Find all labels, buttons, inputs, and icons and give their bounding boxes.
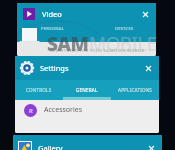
staticText: SAM [47, 31, 89, 57]
button[interactable]: Gallery [13, 135, 162, 150]
button[interactable]: Settings [15, 56, 159, 133]
button[interactable]: Video [17, 3, 156, 56]
staticText: DEVICES [115, 26, 134, 31]
button[interactable]: Close Gallery [143, 140, 159, 150]
button[interactable]: GENERAL [63, 80, 111, 100]
staticText: Accessories [44, 105, 83, 115]
staticText: EVERYTHING FOR YOUR SAMSUNG MOBILE [50, 48, 145, 53]
button[interactable]: Close Video [137, 6, 153, 22]
button[interactable]: CONTROLS [15, 80, 63, 100]
staticText: GENERAL [76, 87, 98, 93]
staticText: APPLICATIONS [118, 87, 153, 93]
staticText: R [29, 107, 33, 115]
staticText: PERSONAL [41, 26, 65, 31]
staticText: Gallery [38, 143, 63, 150]
staticText: CONTROLS [26, 87, 52, 93]
button[interactable]: Close Settings [140, 60, 156, 76]
staticText: MOBILE [89, 31, 157, 57]
button[interactable]: APPLICATIONS [111, 80, 159, 100]
staticText: Video [42, 9, 62, 19]
staticText: Settings [40, 63, 69, 73]
button[interactable]: R [15, 100, 159, 120]
